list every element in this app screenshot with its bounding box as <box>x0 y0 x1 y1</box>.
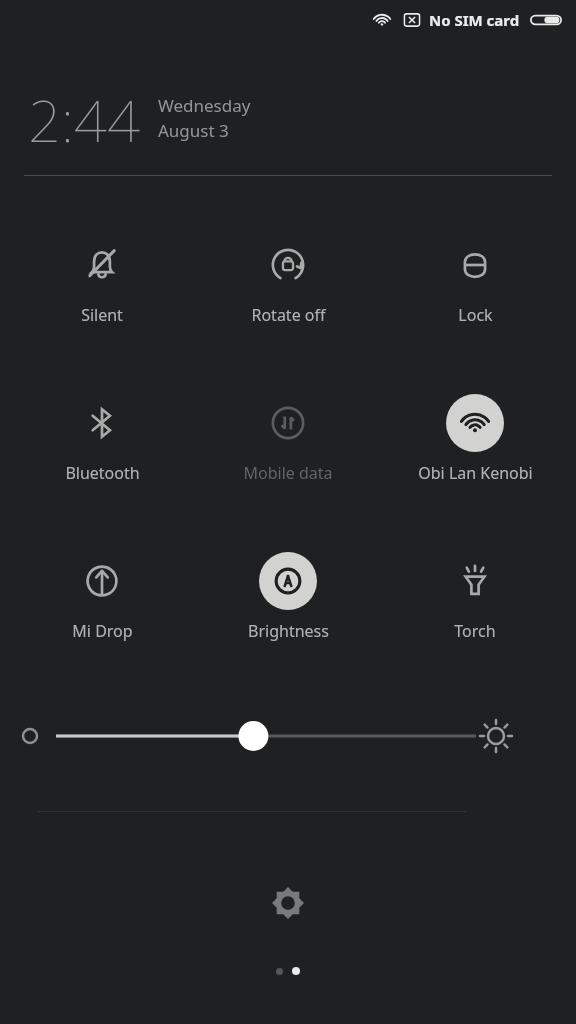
button[interactable]: Settings <box>260 875 316 931</box>
button[interactable]: Torch <box>390 548 560 646</box>
button[interactable]: Silent <box>17 232 187 330</box>
button[interactable]: Mobile data <box>203 390 373 488</box>
staticText: Obi Lan Kenobi <box>418 462 533 484</box>
staticText: Lock <box>458 304 493 326</box>
staticText: Silent <box>81 304 123 326</box>
staticText: No SIM card <box>429 10 520 30</box>
staticText: Mobile data <box>243 462 333 484</box>
button[interactable]: Mi Drop <box>17 548 187 646</box>
staticText: Wednesday <box>158 94 251 117</box>
staticText: Brightness <box>248 620 329 642</box>
button[interactable]: Lock <box>390 232 560 330</box>
staticText: Rotate off <box>251 304 326 326</box>
button[interactable]: Rotate off <box>203 232 373 330</box>
button[interactable]: Brightness <box>203 548 373 646</box>
staticText: 2:44 <box>28 80 140 159</box>
staticText: Bluetooth <box>65 462 140 484</box>
staticText: Torch <box>454 620 496 642</box>
button[interactable]: Bluetooth <box>17 390 187 488</box>
button[interactable]: Brightness slider <box>0 710 576 762</box>
staticText: August 3 <box>158 119 229 142</box>
staticText: Mi Drop <box>72 620 133 642</box>
button[interactable]: Obi Lan Kenobi <box>390 390 560 488</box>
